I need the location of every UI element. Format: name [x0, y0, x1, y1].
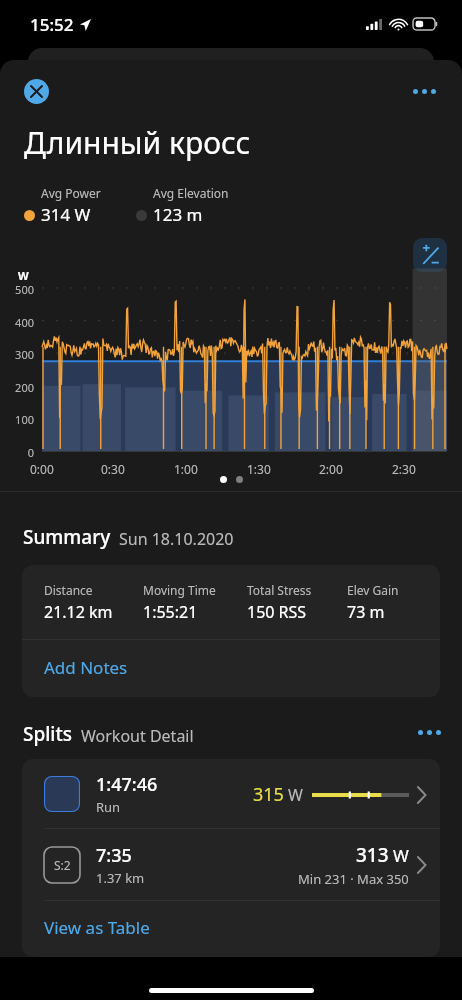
staticText: Workout Detail — [81, 725, 194, 747]
staticText: Splits — [23, 721, 73, 747]
staticText: Длинный кросс — [24, 122, 251, 163]
staticText: 314 W — [41, 203, 91, 226]
staticText: Total Stress — [247, 582, 312, 598]
staticText: 300 — [0, 347, 34, 362]
staticText: 2:30 — [392, 461, 416, 477]
button[interactable]: Add Notes — [22, 640, 440, 697]
staticText: Sun 18.10.2020 — [119, 528, 234, 550]
button[interactable]: Splits options — [414, 717, 444, 747]
staticText: 100 — [0, 412, 34, 427]
staticText: S:2 — [54, 857, 71, 873]
staticText: 315 — [253, 782, 284, 807]
button[interactable]: More options — [404, 71, 444, 111]
staticText: 200 — [0, 380, 34, 395]
staticText: 1:30 — [247, 461, 271, 477]
staticText: 15:52 — [30, 13, 74, 36]
staticText: 7:35 — [96, 843, 132, 868]
staticText: 400 — [0, 315, 34, 330]
staticText: 313 — [356, 842, 389, 868]
staticText: W — [393, 844, 409, 867]
staticText: 2:00 — [319, 461, 343, 477]
staticText: Elev Gain — [347, 582, 399, 598]
staticText: 150 RSS — [247, 601, 307, 623]
staticText: 0:30 — [101, 461, 125, 477]
staticText: View as Table — [44, 916, 150, 939]
staticText: 21.12 km — [44, 601, 113, 623]
staticText: 1:47:46 — [96, 772, 158, 797]
staticText: Add Notes — [44, 656, 128, 679]
staticText: 73 m — [347, 601, 385, 623]
staticText: Summary — [23, 524, 111, 550]
staticText: 1.37 km — [96, 869, 145, 887]
staticText: 1:00 — [174, 461, 198, 477]
staticText: Avg Power — [41, 185, 101, 201]
staticText: W — [288, 784, 303, 806]
staticText: 1:55:21 — [143, 601, 198, 623]
staticText: 500 — [0, 282, 34, 297]
staticText: Min 231 · Max 350 — [298, 870, 409, 888]
staticText: Distance — [44, 582, 93, 598]
staticText: W — [18, 268, 29, 283]
staticText: Moving Time — [143, 582, 216, 598]
staticText: 123 m — [153, 203, 203, 226]
staticText: Avg Elevation — [153, 185, 229, 201]
button[interactable]: Toggle scale — [413, 238, 447, 272]
button[interactable]: 1:47:46 — [22, 759, 440, 828]
staticText: 0:00 — [30, 461, 54, 477]
button[interactable]: S:2 — [22, 829, 440, 900]
staticText: Run — [96, 798, 121, 816]
button[interactable]: Close — [24, 79, 49, 104]
button[interactable]: View as Table — [22, 901, 440, 957]
staticText: 0 — [0, 445, 34, 460]
